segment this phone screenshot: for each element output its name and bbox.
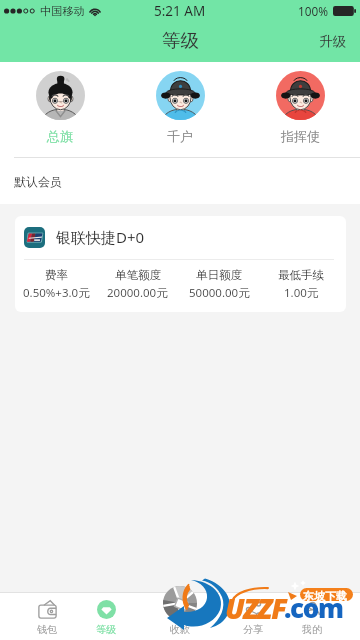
- staticText: .com: [284, 590, 343, 625]
- staticText: 单日额度: [196, 268, 242, 282]
- staticText: 5:21 AM: [154, 2, 206, 20]
- staticText: 0.50%+3.0元: [23, 285, 90, 301]
- staticText: 50000.00元: [189, 285, 250, 301]
- staticText: 单笔额度: [115, 268, 161, 282]
- staticText: 千户: [167, 128, 193, 144]
- staticText: 收款: [170, 623, 190, 636]
- button[interactable]: 银联快捷D+0: [15, 216, 346, 312]
- button[interactable]: 等级: [75, 593, 137, 640]
- button[interactable]: 总旗: [0, 62, 120, 144]
- staticText: 中国移动: [40, 4, 85, 18]
- button[interactable]: 升级: [306, 22, 360, 62]
- button[interactable]: 收款: [149, 593, 211, 640]
- button[interactable]: 指挥使: [240, 62, 360, 144]
- button[interactable]: 千户: [120, 62, 240, 144]
- staticText: 等级: [162, 29, 199, 52]
- staticText: 总旗: [47, 128, 73, 144]
- staticText: 默认会员: [14, 174, 62, 189]
- button[interactable]: 钱包: [16, 593, 78, 640]
- staticText: 东坡下载: [303, 589, 347, 603]
- staticText: 分享: [243, 623, 263, 636]
- staticText: 等级: [96, 623, 116, 636]
- staticText: 指挥使: [281, 128, 320, 144]
- staticText: 费率: [45, 268, 68, 282]
- staticText: 100%: [298, 3, 329, 19]
- staticText: 银联快捷D+0: [56, 227, 145, 247]
- staticText: 升级: [319, 33, 346, 50]
- button[interactable]: 分享: [222, 593, 284, 640]
- staticText: 1.00元: [284, 285, 319, 301]
- staticText: 最低手续: [278, 268, 324, 282]
- staticText: 钱包: [37, 623, 57, 636]
- staticText: UZZF: [225, 589, 286, 627]
- button[interactable]: 我的: [281, 593, 343, 640]
- staticText: 20000.00元: [107, 285, 168, 301]
- staticText: 我的: [302, 623, 322, 636]
